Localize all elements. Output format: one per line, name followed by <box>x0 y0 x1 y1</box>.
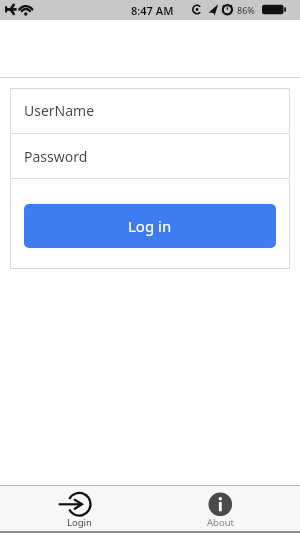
button[interactable] <box>150 486 300 531</box>
button[interactable]: UserName <box>10 88 290 133</box>
staticText: Log in <box>128 216 172 236</box>
button[interactable]: Password <box>10 134 290 178</box>
button[interactable]: Log in <box>24 204 276 248</box>
staticText: 8:47 AM <box>131 3 174 18</box>
staticText: 86% <box>237 4 255 16</box>
button[interactable] <box>0 486 150 531</box>
staticText: UserName <box>24 101 95 120</box>
staticText: About <box>207 516 234 529</box>
staticText: Password <box>24 147 88 166</box>
staticText: Login <box>67 516 92 529</box>
